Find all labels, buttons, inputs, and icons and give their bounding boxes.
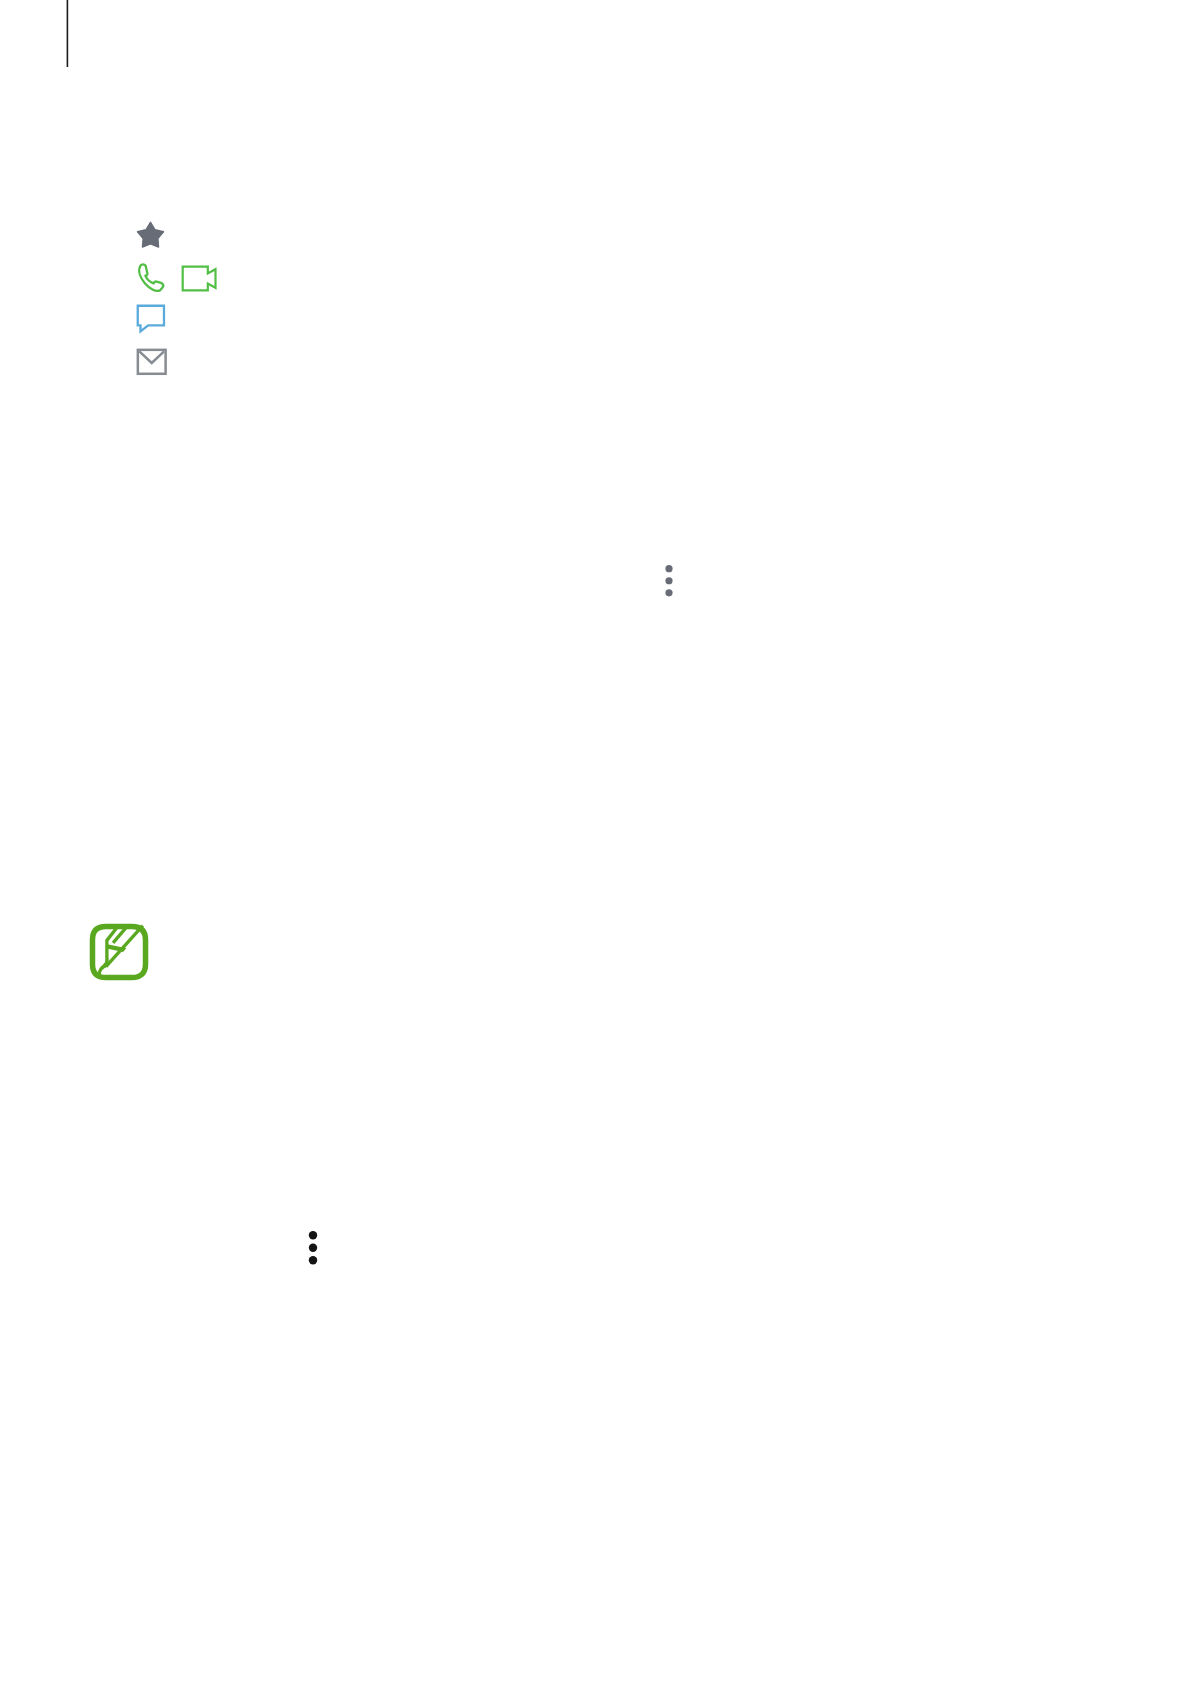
button[interactable]: More options xyxy=(660,564,678,604)
button[interactable]: Call xyxy=(136,263,164,292)
button[interactable]: More options xyxy=(304,1230,322,1271)
button[interactable]: Favourite xyxy=(137,222,164,249)
button[interactable]: Email xyxy=(136,348,167,375)
button[interactable]: Samsung Notes xyxy=(89,923,149,981)
button[interactable]: Message xyxy=(136,304,165,332)
button[interactable]: Video call xyxy=(181,265,217,292)
